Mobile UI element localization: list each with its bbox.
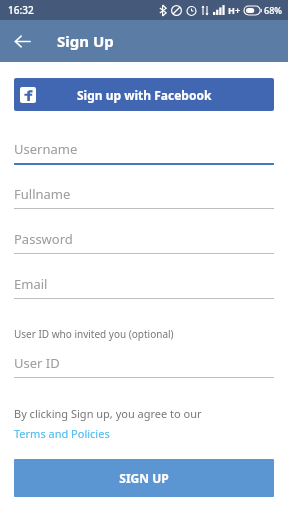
staticText: 68% <box>264 4 282 16</box>
staticText: Password <box>14 230 73 248</box>
button[interactable]: Username <box>14 135 274 180</box>
button[interactable]: Fullname <box>14 180 274 225</box>
staticText: By clicking Sign up, you agree to our <box>14 406 202 421</box>
staticText: H+ <box>228 4 241 16</box>
staticText: User ID who invited you (optional) <box>14 327 174 341</box>
staticText: User ID <box>14 354 60 372</box>
staticText: Fullname <box>14 185 71 203</box>
button[interactable]: Terms and Policies <box>14 426 110 441</box>
button[interactable]: User ID <box>14 349 274 394</box>
staticText: Email <box>14 275 48 293</box>
button[interactable]: SIGN UP <box>14 459 274 497</box>
button[interactable]: Sign up with Facebook <box>14 78 274 111</box>
staticText: Sign up with Facebook <box>77 87 212 103</box>
staticText: 16:32 <box>8 3 34 17</box>
staticText: Sign Up <box>57 31 114 51</box>
button[interactable]: Email <box>14 270 274 315</box>
staticText: SIGN UP <box>119 470 169 486</box>
staticText: Terms and Policies <box>14 426 110 441</box>
staticText: Username <box>14 140 78 158</box>
button[interactable]: Password <box>14 225 274 270</box>
button[interactable]: Back <box>8 27 36 55</box>
